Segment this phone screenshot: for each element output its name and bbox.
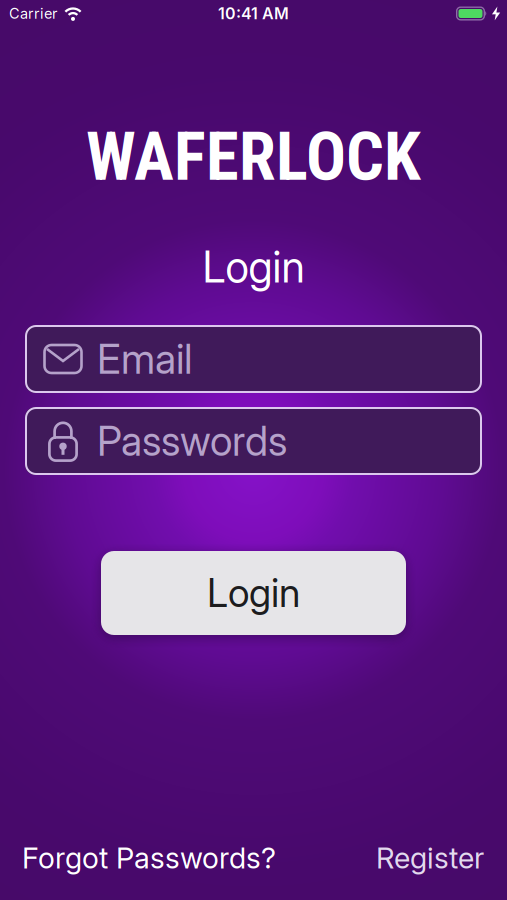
button[interactable]: Register: [376, 840, 484, 876]
button[interactable]: Login: [101, 551, 406, 635]
button[interactable]: Passwords: [25, 407, 482, 475]
button[interactable]: Email: [25, 325, 482, 393]
staticText: Carrier: [9, 5, 57, 22]
staticText: Login: [202, 241, 304, 293]
staticText: Register: [376, 840, 484, 876]
button[interactable]: Forgot Passwords?: [22, 840, 276, 876]
staticText: Forgot Passwords?: [22, 840, 276, 876]
staticText: Email: [97, 334, 192, 383]
staticText: Login: [207, 570, 300, 616]
staticText: 10:41 AM: [218, 4, 289, 23]
staticText: WAFERLOCK: [86, 118, 421, 196]
staticText: Passwords: [97, 416, 287, 465]
